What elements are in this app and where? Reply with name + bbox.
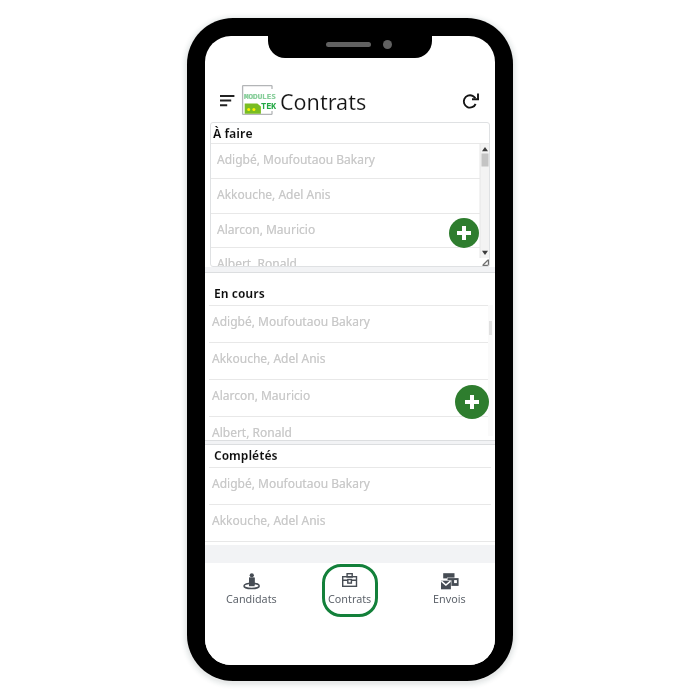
staticText: À faire <box>213 125 253 141</box>
staticText: Candidats <box>226 591 277 606</box>
staticText: Alarcon, Mauricio <box>217 221 316 237</box>
button[interactable]: Akkouche, Adel Anis <box>205 505 495 541</box>
button[interactable]: Akkouche, Adel Anis <box>210 179 490 213</box>
staticText: Contrats <box>280 87 367 116</box>
staticText: TEK <box>261 100 277 112</box>
button[interactable]: Akkouche, Adel Anis <box>205 343 495 379</box>
staticText: Contrats <box>328 591 372 606</box>
button[interactable]: Add <box>449 218 479 248</box>
button[interactable]: Add <box>455 385 489 419</box>
button[interactable]: Candidats <box>223 564 279 617</box>
staticText: Envois <box>433 591 466 606</box>
staticText: Complétés <box>214 447 278 463</box>
button[interactable]: Alarcon, Mauricio <box>205 380 495 416</box>
staticText: Albert, Ronald <box>212 424 292 440</box>
staticText: Akkouche, Adel Anis <box>212 350 326 366</box>
button[interactable]: Alarcon, Mauricio <box>210 214 490 247</box>
button[interactable]: Adigbé, Moufoutaou Bakary <box>210 144 490 178</box>
button[interactable]: Adigbé, Moufoutaou Bakary <box>205 306 495 342</box>
staticText: Alarcon, Mauricio <box>212 387 311 403</box>
staticText: Akkouche, Adel Anis <box>212 512 326 528</box>
button[interactable]: Albert, Ronald <box>210 248 490 267</box>
staticText: En cours <box>214 285 265 301</box>
staticText: Adigbé, Moufoutaou Bakary <box>217 151 375 167</box>
button[interactable]: Refresh <box>457 86 487 116</box>
button[interactable]: Adigbé, Moufoutaou Bakary <box>205 468 495 504</box>
button[interactable]: Envois <box>421 564 477 617</box>
staticText: Adigbé, Moufoutaou Bakary <box>212 313 370 329</box>
staticText: MODULES <box>244 91 276 101</box>
button[interactable]: Albert, Ronald <box>205 417 495 440</box>
staticText: Adigbé, Moufoutaou Bakary <box>212 475 370 491</box>
staticText: Akkouche, Adel Anis <box>217 186 331 202</box>
button[interactable]: Menu <box>213 88 241 114</box>
staticText: Albert, Ronald <box>217 255 297 267</box>
button[interactable]: Contrats <box>322 564 378 617</box>
